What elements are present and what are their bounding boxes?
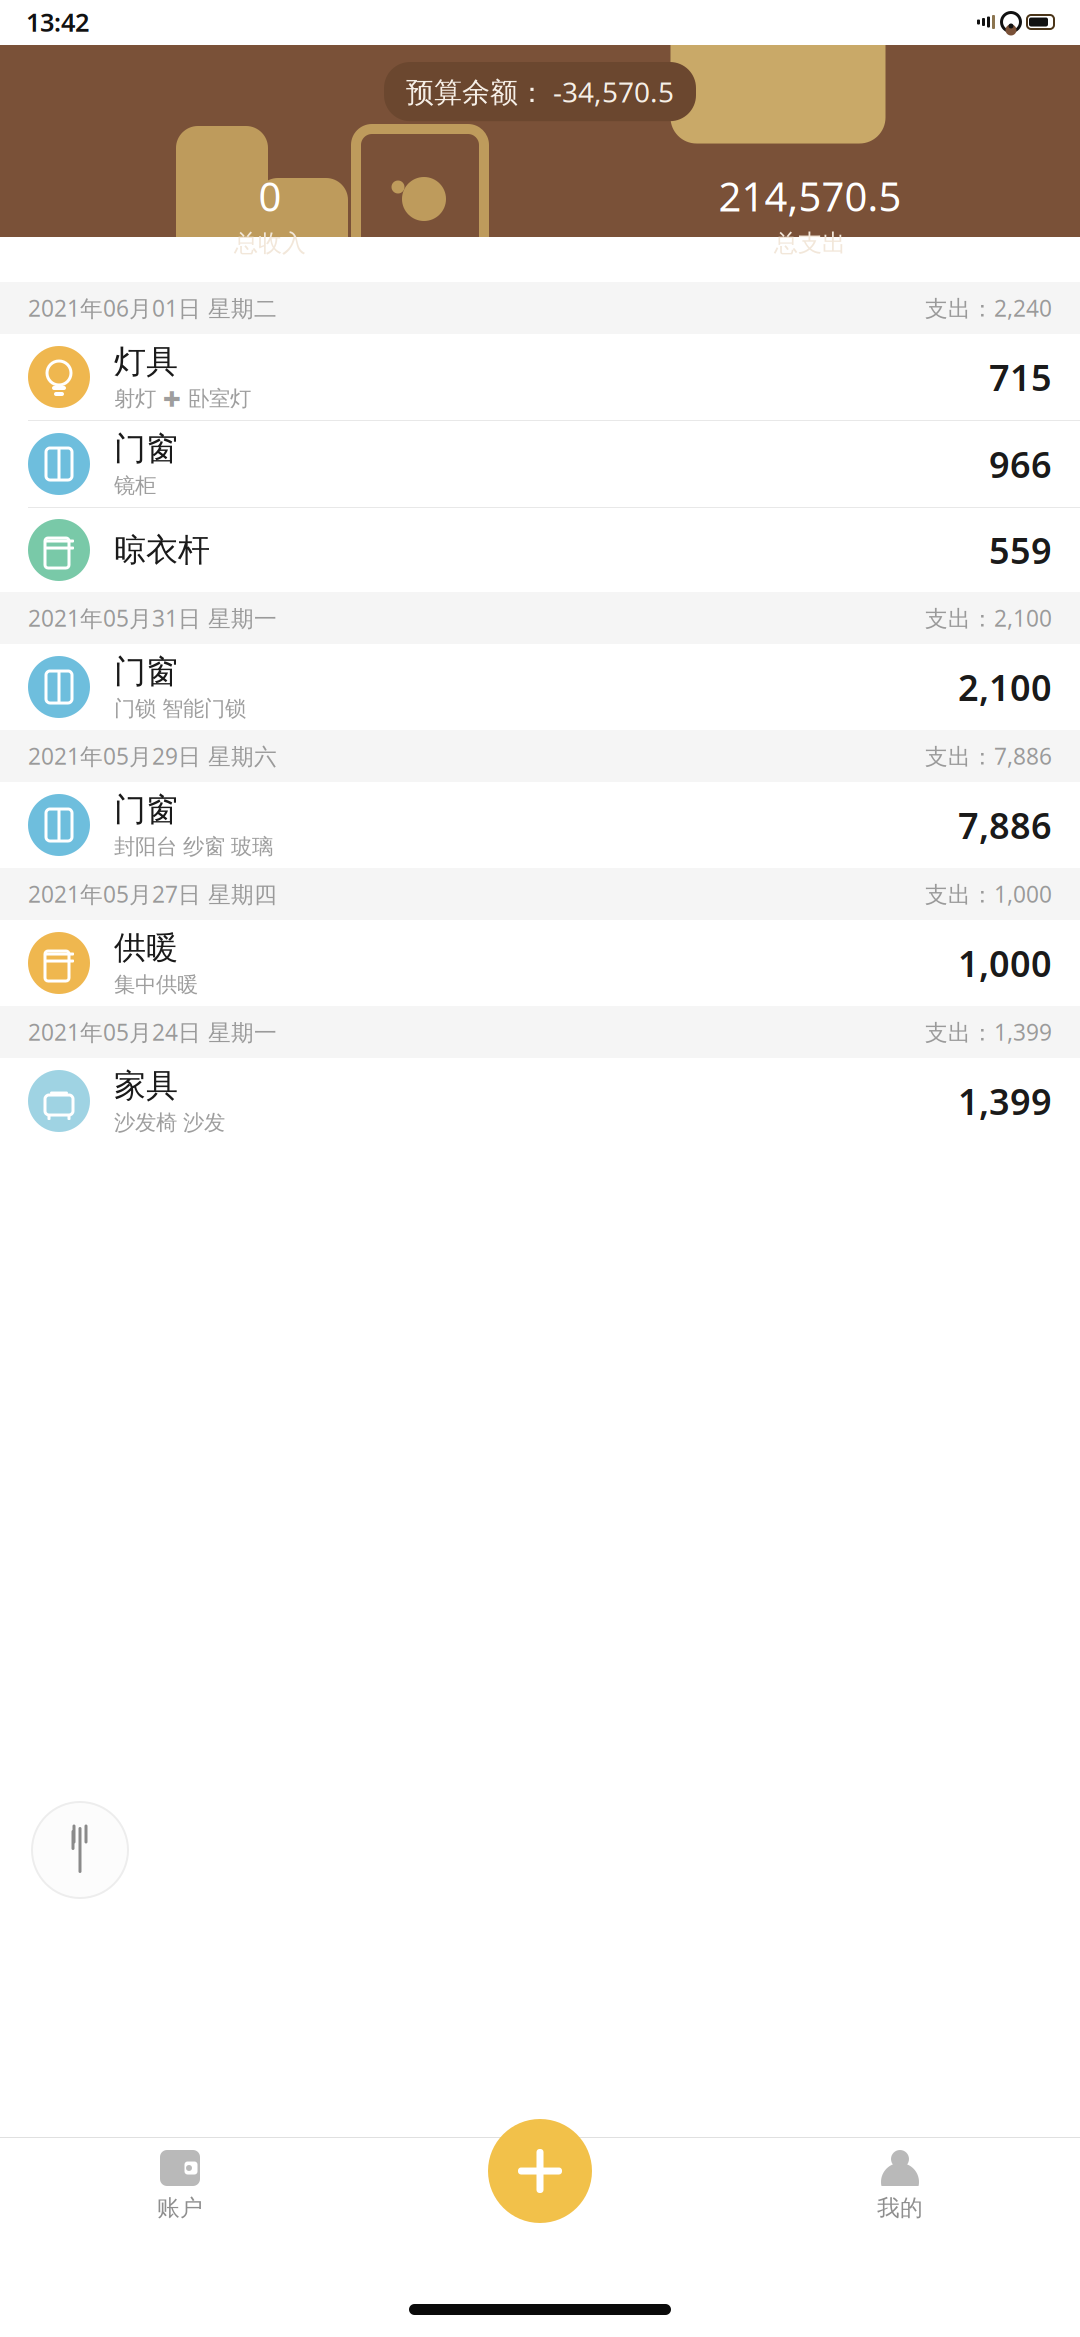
button[interactable]: 预算余额： -34,570.5	[384, 62, 696, 121]
staticText: 我的	[877, 2194, 923, 2222]
staticText: 559	[989, 526, 1052, 574]
staticText: 支出：2,100	[925, 603, 1052, 633]
button[interactable]: 214,570.5	[540, 169, 1080, 258]
staticText: 账户	[157, 2194, 203, 2222]
staticText: 总支出	[774, 228, 846, 258]
staticText: 家具	[114, 1066, 178, 1105]
button[interactable]: 0	[0, 169, 540, 258]
staticText: 沙发椅 沙发	[114, 1110, 225, 1136]
staticText: 966	[989, 440, 1052, 488]
button[interactable]: 灯具	[0, 334, 1080, 421]
button[interactable]: 门窗	[0, 644, 1080, 730]
button[interactable]: Add record	[488, 2119, 592, 2223]
staticText: 1,000	[958, 939, 1052, 987]
staticText: 射灯 ✚ 卧室灯	[114, 386, 251, 412]
staticText: 门窗	[114, 652, 178, 691]
staticText: 2021年05月29日 星期六	[28, 741, 277, 771]
staticText: 支出：1,399	[925, 1017, 1052, 1047]
staticText: 镜柜	[114, 473, 156, 499]
staticText: 2021年05月31日 星期一	[28, 603, 277, 633]
staticText: 封阳台 纱窗 玻璃	[114, 834, 273, 860]
staticText: 总收入	[234, 228, 306, 258]
staticText: 支出：1,000	[925, 879, 1052, 909]
staticText: 支出：2,240	[925, 293, 1052, 323]
staticText: 门锁 智能门锁	[114, 696, 246, 722]
button[interactable]: 账户	[0, 2138, 360, 2234]
staticText: 1,399	[958, 1077, 1052, 1125]
staticText: 214,570.5	[718, 169, 901, 222]
staticText: 门窗	[114, 790, 178, 829]
staticText: 供暖	[114, 928, 178, 967]
button[interactable]: Scroll to top	[32, 1802, 128, 1898]
button[interactable]: 供暖	[0, 920, 1080, 1006]
button[interactable]: 门窗	[0, 782, 1080, 868]
staticText: 门窗	[114, 429, 178, 468]
staticText: 715	[989, 353, 1052, 401]
button[interactable]: 门窗	[0, 421, 1080, 508]
staticText: 13:42	[26, 5, 89, 39]
staticText: 0	[258, 169, 281, 222]
staticText: 2021年05月27日 星期四	[28, 879, 277, 909]
staticText: 7,886	[958, 801, 1052, 849]
button[interactable]: 我的	[720, 2138, 1080, 2234]
staticText: 晾衣杆	[114, 530, 210, 570]
staticText: 预算余额： -34,570.5	[406, 73, 674, 110]
staticText: 2021年05月24日 星期一	[28, 1017, 277, 1047]
button[interactable]: 家具	[0, 1058, 1080, 1144]
button[interactable]: 晾衣杆	[0, 508, 1080, 592]
staticText: 支出：7,886	[925, 741, 1052, 771]
staticText: 集中供暖	[114, 972, 198, 998]
staticText: 灯具	[114, 342, 178, 381]
staticText: 2021年06月01日 星期二	[28, 293, 277, 323]
staticText: 2,100	[958, 663, 1052, 711]
